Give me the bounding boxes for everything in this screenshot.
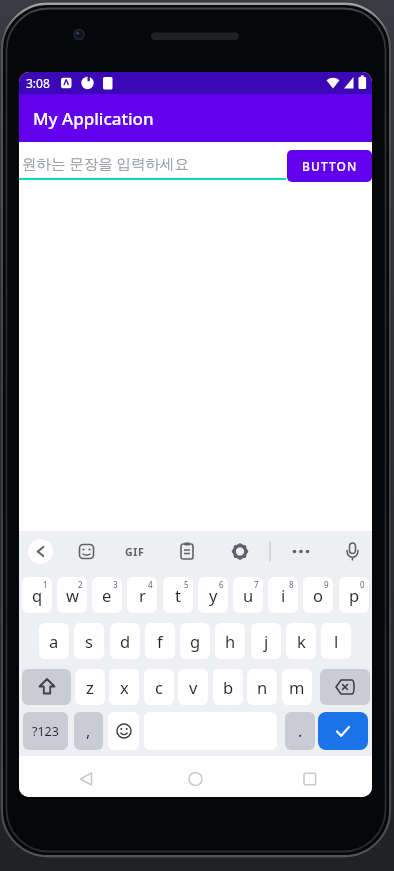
staticText: My Application [33, 107, 154, 130]
button[interactable]: i [268, 577, 298, 613]
staticText: 6 [219, 579, 224, 590]
button[interactable]: p [339, 577, 369, 613]
staticText: 7 [254, 579, 259, 590]
staticText: 2 [78, 579, 83, 590]
button[interactable]: k [286, 623, 316, 659]
button[interactable]: f [145, 623, 175, 659]
button[interactable]: s [74, 623, 104, 659]
staticText: x [120, 676, 129, 698]
staticText: h [225, 630, 236, 652]
staticText: q [32, 584, 43, 606]
staticText: . [298, 720, 303, 742]
button[interactable]: c [144, 669, 174, 705]
button[interactable] [22, 669, 71, 705]
staticText: 8 [289, 579, 294, 590]
button[interactable]: o [303, 577, 333, 613]
staticText: , [86, 720, 91, 742]
button[interactable]: d [110, 623, 140, 659]
staticText: w [66, 584, 79, 606]
staticText: v [189, 676, 198, 698]
button[interactable]: e [92, 577, 122, 613]
button[interactable] [318, 712, 368, 750]
staticText: r [139, 584, 146, 606]
button[interactable] [320, 669, 370, 705]
staticText: 9 [324, 579, 329, 590]
button[interactable]: r [127, 577, 157, 613]
staticText: GIF [125, 545, 145, 559]
button[interactable]: n [247, 669, 277, 705]
button[interactable]: v [178, 669, 208, 705]
button[interactable]: . [285, 712, 315, 750]
staticText: s [85, 630, 93, 652]
staticText: ?123 [32, 723, 59, 740]
button[interactable] [74, 766, 109, 792]
button[interactable] [108, 712, 139, 750]
staticText: e [102, 584, 112, 606]
staticText: 4 [148, 579, 153, 590]
button[interactable]: y [198, 577, 228, 613]
staticText: k [297, 630, 306, 652]
staticText: 5 [184, 579, 189, 590]
button[interactable] [178, 766, 213, 792]
staticText: 1 [43, 579, 48, 590]
button[interactable]: ?123 [23, 712, 68, 750]
staticText: 3 [113, 579, 118, 590]
staticText: d [120, 630, 131, 652]
button[interactable]: a [39, 623, 69, 659]
staticText: t [175, 584, 181, 606]
staticText: f [157, 630, 163, 652]
staticText: n [257, 676, 268, 698]
button[interactable]: q [22, 577, 52, 613]
button[interactable]: l [321, 623, 351, 659]
staticText: g [190, 630, 201, 652]
staticText: i [281, 584, 286, 606]
button[interactable]: , [74, 712, 103, 750]
staticText: c [155, 676, 163, 698]
button[interactable]: j [251, 623, 281, 659]
button[interactable]: w [57, 577, 87, 613]
staticText: z [86, 676, 94, 698]
button[interactable]: z [75, 669, 105, 705]
button[interactable]: x [109, 669, 139, 705]
staticText: BUTTON [302, 158, 358, 174]
staticText: 3:08 [26, 75, 50, 91]
staticText: a [49, 630, 59, 652]
staticText: l [334, 630, 339, 652]
button[interactable] [292, 766, 327, 792]
button[interactable]: g [180, 623, 210, 659]
staticText: j [264, 630, 269, 652]
staticText: m [289, 676, 305, 698]
staticText: u [243, 584, 254, 606]
staticText: y [209, 584, 218, 606]
button[interactable]: b [213, 669, 243, 705]
staticText: o [313, 584, 323, 606]
button[interactable]: m [282, 669, 312, 705]
button[interactable]: t [163, 577, 193, 613]
button[interactable]: h [215, 623, 245, 659]
button[interactable]: BUTTON [287, 150, 372, 182]
staticText: 원하는 문장을 입력하세요 [22, 153, 190, 173]
staticText: b [223, 676, 234, 698]
button[interactable]: u [233, 577, 263, 613]
staticText: p [349, 584, 360, 606]
staticText: 0 [360, 579, 365, 590]
